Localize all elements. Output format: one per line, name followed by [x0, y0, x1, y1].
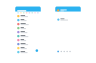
button[interactable]: Filter	[17, 12, 19, 14]
button[interactable]: Attachment	[66, 51, 68, 52]
button[interactable]	[15, 26, 41, 30]
button[interactable]: Filter	[26, 12, 27, 14]
button[interactable]: Filter	[37, 12, 39, 14]
button[interactable]	[15, 30, 41, 34]
button[interactable]	[15, 6, 41, 11]
button[interactable]	[15, 14, 41, 18]
button[interactable]	[15, 50, 41, 54]
button[interactable]	[15, 42, 41, 46]
button[interactable]	[15, 22, 41, 26]
button[interactable]	[15, 38, 41, 42]
button[interactable]: Filter	[31, 12, 33, 14]
button[interactable]	[15, 18, 41, 22]
button[interactable]: Filter	[34, 12, 36, 14]
button[interactable]	[15, 46, 41, 50]
button[interactable]: Add	[57, 51, 59, 52]
button[interactable]: Filter	[29, 12, 30, 14]
button[interactable]	[15, 34, 41, 38]
button[interactable]: Filter	[23, 12, 25, 14]
button[interactable]: Filter	[20, 12, 22, 14]
button[interactable]: New chat	[35, 49, 38, 52]
